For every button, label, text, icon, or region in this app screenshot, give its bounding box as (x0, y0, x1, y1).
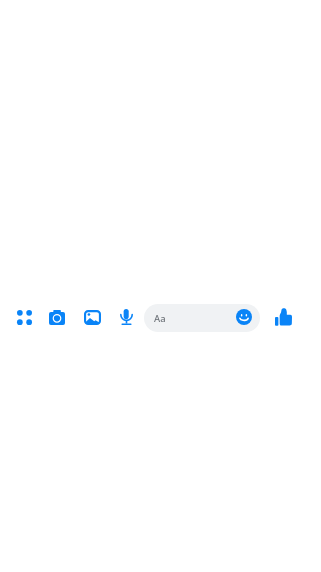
button[interactable]: More options (9, 302, 39, 332)
button[interactable]: Aa (144, 304, 260, 332)
button[interactable]: Send like (268, 302, 298, 332)
button[interactable]: Gallery (77, 302, 107, 332)
button[interactable]: Voice message (111, 302, 141, 332)
button[interactable]: Emoji (233, 306, 255, 328)
button[interactable]: Camera (42, 302, 72, 332)
staticText: Aa (154, 312, 166, 325)
